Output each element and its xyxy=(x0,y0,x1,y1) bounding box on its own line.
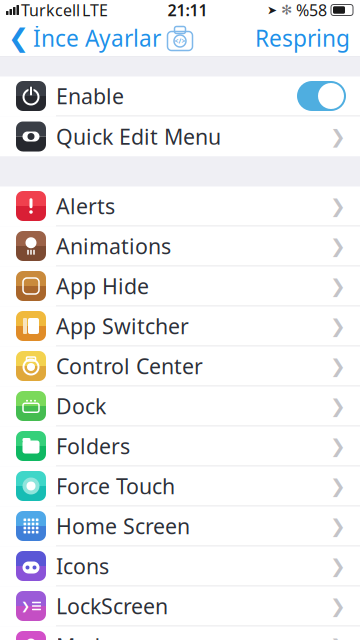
staticText: ➤ xyxy=(267,3,277,17)
button[interactable]: Force Touch xyxy=(0,466,360,506)
staticText: ❯ xyxy=(330,355,346,377)
staticText: Alerts xyxy=(56,192,115,220)
button[interactable]: Developer tools xyxy=(165,23,195,53)
staticText: ❯ xyxy=(330,515,346,537)
staticText: App Switcher xyxy=(56,312,189,340)
staticText: Force Touch xyxy=(56,472,175,500)
staticText: 21:11 xyxy=(167,0,207,21)
staticText: Dock xyxy=(56,392,106,420)
button[interactable]: App Switcher xyxy=(0,306,360,346)
button[interactable]: Alerts xyxy=(0,186,360,226)
button[interactable]: ❮ xyxy=(0,17,161,59)
button[interactable]: Home Screen xyxy=(0,506,360,546)
button[interactable]: App Hide xyxy=(0,266,360,306)
staticText: LockScreen xyxy=(56,592,168,620)
staticText: ❯ xyxy=(330,435,346,457)
staticText: %58 xyxy=(296,0,327,21)
staticText: ❯ xyxy=(330,555,346,577)
button[interactable]: Medusa xyxy=(0,626,360,640)
staticText: ❯ xyxy=(21,600,30,612)
staticText: Medusa xyxy=(56,632,135,640)
staticText: Control Center xyxy=(56,352,203,380)
staticText: Folders xyxy=(56,432,130,460)
button[interactable]: Animations xyxy=(0,226,360,266)
staticText: Quick Edit Menu xyxy=(56,122,221,151)
button[interactable]: ❯ xyxy=(0,586,360,626)
staticText: İnce Ayarlar xyxy=(33,23,161,53)
button[interactable]: Respring xyxy=(255,17,360,59)
staticText: ❯ xyxy=(330,126,346,147)
button[interactable]: Icons xyxy=(0,546,360,586)
staticText: Turkcell xyxy=(21,0,80,21)
staticText: ❯ xyxy=(330,315,346,337)
staticText: ✻ xyxy=(281,2,292,17)
button[interactable]: Enable xyxy=(0,76,360,116)
staticText: ❯ xyxy=(330,275,346,297)
staticText: App Hide xyxy=(56,272,149,300)
staticText: Icons xyxy=(56,552,109,580)
button[interactable]: Quick Edit Menu xyxy=(0,116,360,156)
staticText: LTE xyxy=(82,0,108,21)
staticText: ❯ xyxy=(330,475,346,497)
staticText: Respring xyxy=(255,23,350,53)
staticText: ❯ xyxy=(330,595,346,617)
staticText: Animations xyxy=(56,232,171,260)
staticText: Home Screen xyxy=(56,512,190,540)
staticText: </> xyxy=(174,37,185,45)
staticText: ❮ xyxy=(8,24,29,52)
button[interactable]: Control Center xyxy=(0,346,360,386)
staticText: Enable xyxy=(56,82,124,110)
staticText: ❯ xyxy=(330,635,346,640)
button[interactable]: Folders xyxy=(0,426,360,466)
staticText: ❯ xyxy=(330,395,346,417)
button[interactable]: Dock xyxy=(0,386,360,426)
staticText: ❯ xyxy=(330,235,346,257)
staticText: ❯ xyxy=(330,195,346,217)
